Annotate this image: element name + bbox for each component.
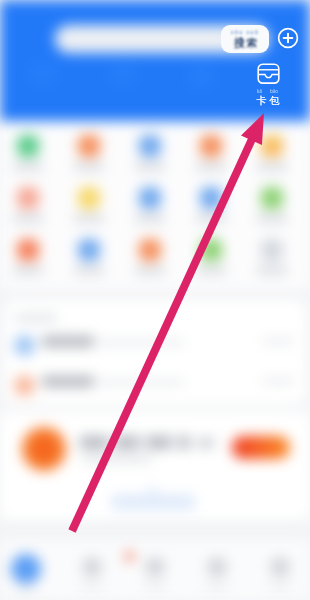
button[interactable] xyxy=(187,540,247,600)
button[interactable] xyxy=(121,135,179,170)
button[interactable] xyxy=(0,540,56,600)
staticText: bāo xyxy=(270,88,279,94)
button[interactable]: 卡包 xyxy=(250,63,286,107)
button[interactable] xyxy=(0,135,57,170)
button[interactable] xyxy=(4,331,306,367)
button[interactable] xyxy=(60,187,118,222)
button[interactable] xyxy=(125,540,185,600)
button[interactable] xyxy=(182,135,240,170)
button[interactable] xyxy=(110,495,196,509)
staticText: sōu suǒ xyxy=(231,29,260,36)
button[interactable] xyxy=(182,239,240,274)
button[interactable] xyxy=(232,436,290,459)
staticText: 搜索 xyxy=(233,36,258,50)
button[interactable] xyxy=(0,239,57,274)
button[interactable] xyxy=(243,135,301,170)
button[interactable] xyxy=(243,187,301,222)
button[interactable]: sōu suǒ xyxy=(221,25,269,53)
button[interactable] xyxy=(4,371,306,404)
staticText: kǎ xyxy=(257,88,262,94)
staticText: 卡包 xyxy=(255,94,281,107)
button[interactable] xyxy=(60,239,118,274)
button[interactable] xyxy=(182,187,240,222)
button[interactable] xyxy=(55,25,269,53)
button[interactable] xyxy=(121,239,179,274)
button[interactable] xyxy=(121,187,179,222)
button[interactable] xyxy=(243,239,301,274)
button[interactable] xyxy=(250,540,310,600)
button[interactable] xyxy=(0,187,57,222)
button[interactable] xyxy=(60,135,118,170)
button[interactable]: Add xyxy=(277,27,299,49)
button[interactable] xyxy=(62,540,122,600)
